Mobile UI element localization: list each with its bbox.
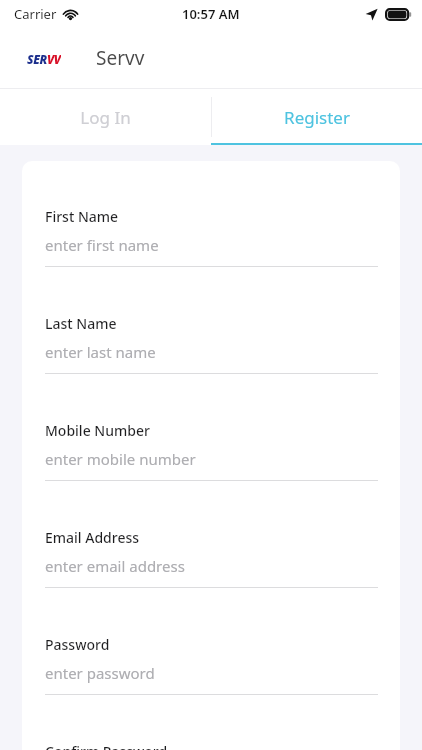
staticText: enter first name bbox=[45, 235, 159, 255]
staticText: First Name bbox=[45, 207, 119, 226]
staticText: Last Name bbox=[45, 314, 117, 333]
staticText: Log In bbox=[80, 106, 131, 129]
staticText: Carrier bbox=[14, 5, 57, 23]
staticText: Password bbox=[45, 635, 110, 654]
staticText: 10:57 AM bbox=[182, 5, 240, 23]
staticText: enter email address bbox=[45, 556, 185, 576]
staticText: Register bbox=[284, 106, 350, 129]
staticText: Confirm Password bbox=[45, 742, 168, 750]
staticText: Mobile Number bbox=[45, 421, 150, 440]
staticText: enter last name bbox=[45, 342, 156, 362]
button[interactable]: Password bbox=[22, 633, 400, 740]
staticText: enter mobile number bbox=[45, 449, 196, 469]
button[interactable]: Log In bbox=[0, 89, 211, 145]
staticText: Servv bbox=[96, 45, 145, 71]
button[interactable]: Register bbox=[211, 89, 422, 145]
staticText: Email Address bbox=[45, 528, 140, 547]
button[interactable]: Mobile Number bbox=[22, 419, 400, 526]
button[interactable]: Email Address bbox=[22, 526, 400, 633]
staticText: VV bbox=[47, 51, 61, 65]
button[interactable]: Servv logo bbox=[27, 51, 73, 65]
button[interactable]: First Name bbox=[22, 205, 400, 312]
staticText: SER bbox=[27, 51, 47, 65]
staticText: enter password bbox=[45, 663, 155, 683]
button[interactable]: Confirm Password bbox=[22, 740, 400, 750]
button[interactable]: Last Name bbox=[22, 312, 400, 419]
